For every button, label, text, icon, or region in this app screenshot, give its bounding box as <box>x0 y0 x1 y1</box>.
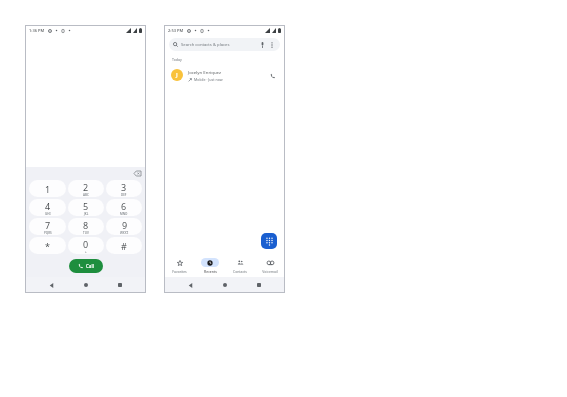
button[interactable]: 7 <box>29 218 66 235</box>
staticText: 3 <box>121 181 127 193</box>
button[interactable]: 8 <box>68 218 104 235</box>
button[interactable]: 3 <box>106 180 142 197</box>
button[interactable]: 4 <box>29 199 66 216</box>
staticText: 1:36 PM <box>29 28 45 33</box>
button[interactable]: More options <box>268 41 276 49</box>
button[interactable]: Voice search <box>258 41 266 49</box>
staticText: Contacts <box>233 269 247 274</box>
button[interactable]: Home <box>77 277 95 293</box>
button[interactable]: 1 <box>29 180 66 197</box>
staticText: # <box>121 240 127 252</box>
button[interactable]: 5 <box>68 199 104 216</box>
button[interactable]: Home <box>216 277 234 293</box>
button[interactable]: Voicemail <box>255 255 285 277</box>
staticText: Search contacts & places <box>181 42 230 48</box>
staticText: Mobile · Just now <box>194 77 223 82</box>
staticText: 9 <box>122 219 128 231</box>
staticText: Recents <box>204 269 217 274</box>
staticText: 2 <box>83 181 89 193</box>
button[interactable]: Call <box>69 259 103 273</box>
staticText: 1 <box>45 183 51 195</box>
button[interactable]: Search contacts & places <box>169 38 280 51</box>
button[interactable]: 2 <box>68 180 104 197</box>
staticText: 2:53 PM <box>168 28 184 33</box>
button[interactable]: Recent apps <box>111 277 129 293</box>
button[interactable]: Backspace <box>132 168 143 179</box>
staticText: 4 <box>45 200 51 212</box>
staticText: WXYZ <box>120 231 129 235</box>
button[interactable]: 6 <box>106 199 142 216</box>
button[interactable]: Recent apps <box>250 277 268 293</box>
staticText: Voicemail <box>262 269 278 274</box>
button[interactable]: Contacts <box>225 255 255 277</box>
staticText: 6 <box>121 200 127 212</box>
staticText: JKL <box>84 212 89 216</box>
button[interactable]: Back <box>42 277 60 293</box>
button[interactable]: 9 <box>106 218 142 235</box>
button[interactable]: 0 <box>68 237 104 254</box>
staticText: PQRS <box>44 231 52 235</box>
button[interactable]: J <box>164 65 285 85</box>
button[interactable]: Favorites <box>164 255 195 277</box>
staticText: Today <box>172 57 182 62</box>
button[interactable]: Open dialpad <box>261 233 277 249</box>
staticText: GHI <box>45 212 51 216</box>
staticText: ABC <box>83 193 89 197</box>
button[interactable]: Back <box>181 277 199 293</box>
staticText: 0 <box>83 238 89 250</box>
staticText: 5 <box>83 200 89 212</box>
staticText: J <box>176 71 178 79</box>
staticText: * <box>45 240 50 252</box>
staticText: TUV <box>83 231 89 235</box>
staticText: Call <box>86 263 94 269</box>
button[interactable]: Recents <box>195 255 225 277</box>
button[interactable]: * <box>29 237 66 254</box>
staticText: 8 <box>83 219 89 231</box>
staticText: Favorites <box>172 269 187 274</box>
staticText: Jocelyn Enriquez <box>188 69 221 75</box>
staticText: + <box>85 250 87 254</box>
staticText: 7 <box>45 219 51 231</box>
button[interactable]: Call Jocelyn Enriquez <box>267 70 278 81</box>
staticText: MNO <box>120 212 128 216</box>
button[interactable]: # <box>106 237 142 254</box>
staticText: DEF <box>121 193 127 197</box>
